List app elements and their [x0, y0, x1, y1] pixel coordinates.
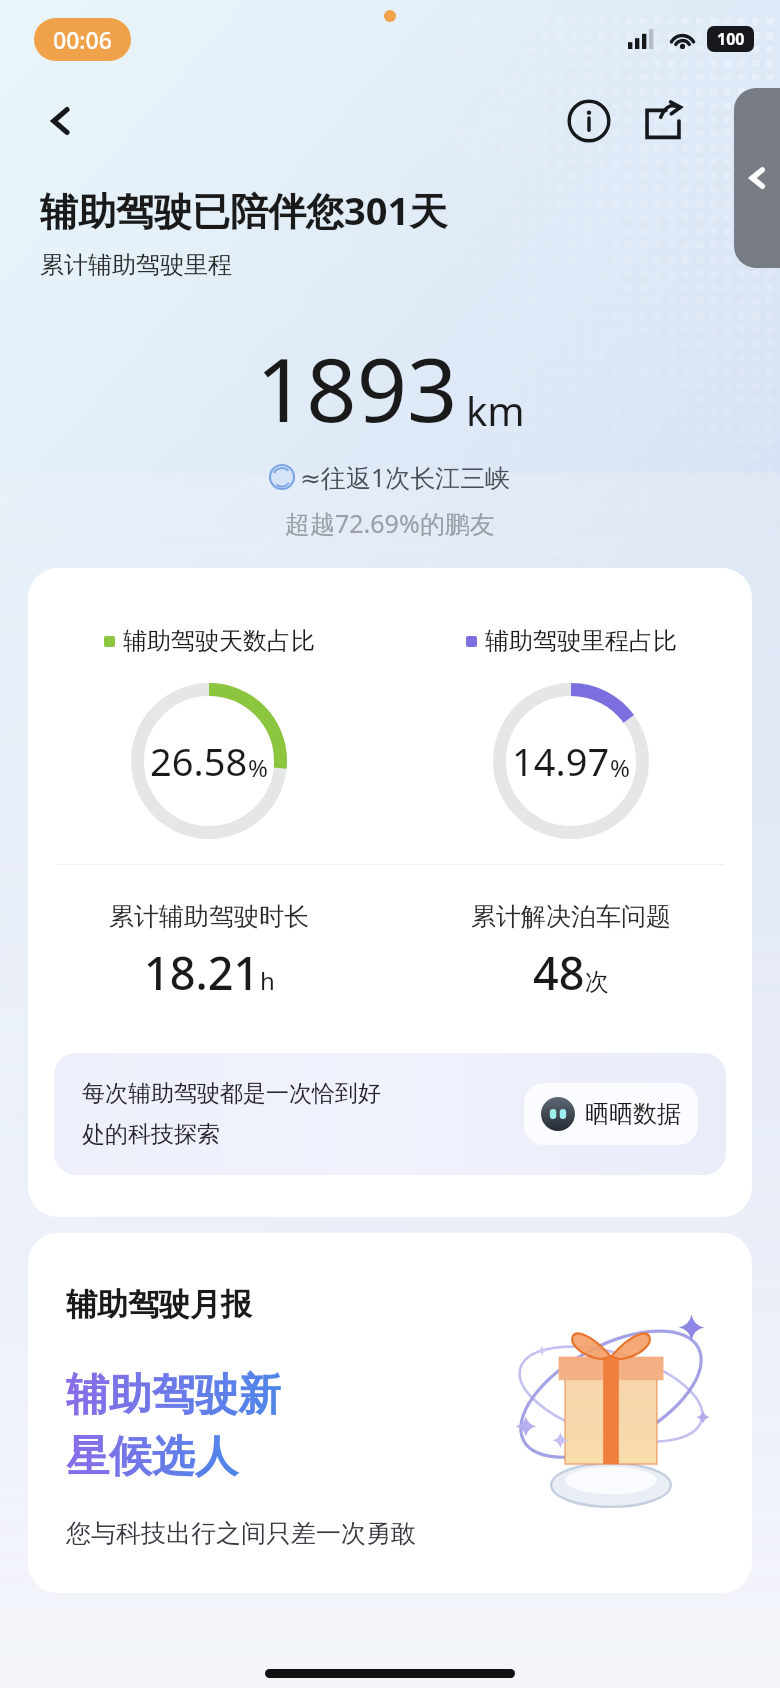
button[interactable]: Open side panel: [734, 88, 780, 268]
staticText: 辅助驾驶里程占比: [485, 626, 677, 656]
staticText: 辅助驾驶已陪伴您301天: [40, 184, 448, 236]
staticText: 您与科技出行之间只差一次勇敢: [66, 1518, 416, 1549]
staticText: 26.58: [150, 735, 248, 787]
staticText: 处的科技探索: [82, 1120, 220, 1149]
staticText: 18.21: [144, 942, 260, 1003]
staticText: 14.97: [512, 735, 610, 787]
staticText: 00:06: [53, 24, 112, 55]
button[interactable]: 晒晒数据: [524, 1083, 698, 1145]
staticText: 100: [717, 28, 745, 50]
staticText: 辅助驾驶新: [66, 1368, 281, 1422]
button[interactable]: 辅助驾驶月报: [28, 1233, 752, 1593]
staticText: 累计解决泊车问题: [471, 901, 671, 932]
staticText: 星候选人: [66, 1430, 238, 1484]
staticText: 48: [533, 942, 585, 1003]
staticText: 晒晒数据: [585, 1099, 681, 1129]
staticText: 辅助驾驶月报: [66, 1285, 252, 1324]
staticText: 辅助驾驶天数占比: [123, 626, 315, 656]
staticText: 累计辅助驾驶里程: [40, 250, 232, 280]
button[interactable]: Share: [634, 92, 692, 150]
staticText: 超越72.69%的鹏友: [285, 506, 495, 540]
staticText: ≈往返1次长江三峡: [300, 460, 511, 494]
staticText: km: [466, 383, 525, 437]
staticText: h: [260, 964, 275, 997]
staticText: 1893: [256, 328, 458, 448]
staticText: %: [248, 751, 268, 784]
staticText: %: [610, 751, 630, 784]
staticText: 累计辅助驾驶时长: [109, 901, 309, 932]
button[interactable]: Back: [32, 92, 90, 150]
staticText: 次: [585, 967, 609, 997]
button[interactable]: Info: [560, 92, 618, 150]
staticText: 每次辅助驾驶都是一次恰到好: [82, 1079, 381, 1108]
